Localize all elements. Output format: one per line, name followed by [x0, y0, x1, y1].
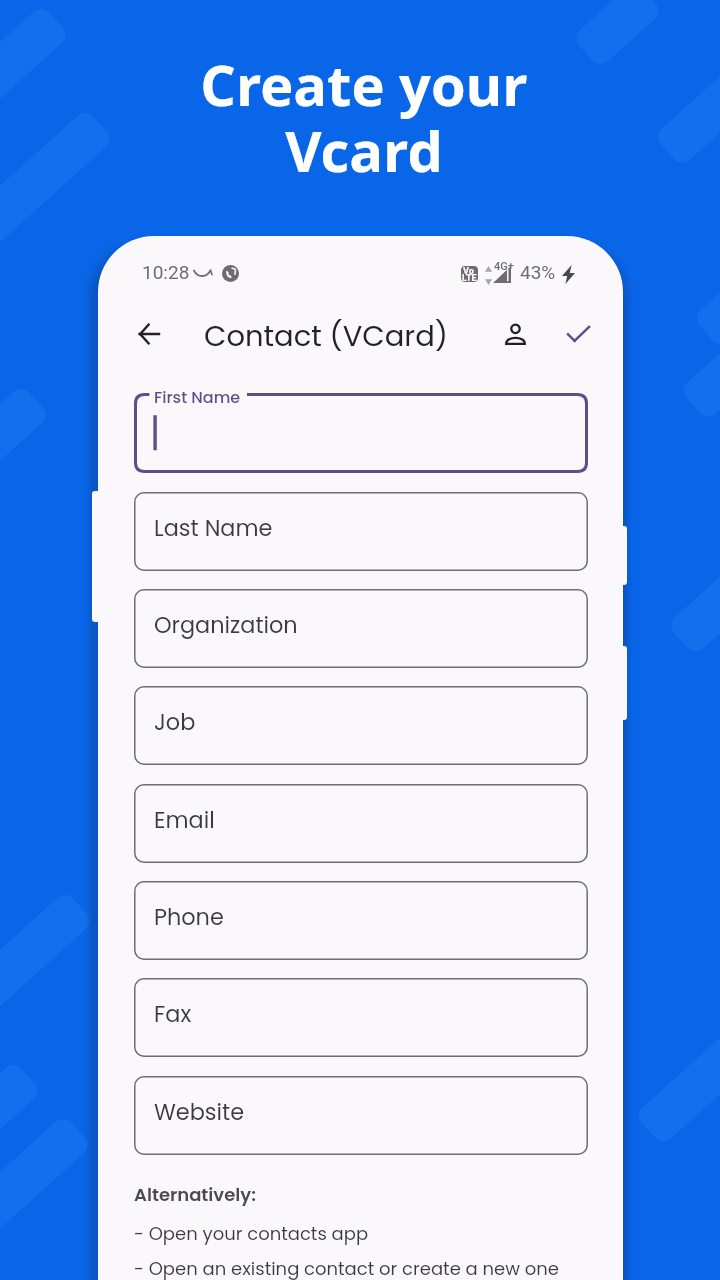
button[interactable]: Back [131, 316, 167, 352]
staticText: First Name [154, 386, 241, 408]
staticText: 4G+ [494, 260, 514, 273]
button[interactable]: Organization [134, 589, 588, 668]
staticText: - Open an existing contact or create a n… [134, 1256, 560, 1280]
staticText: Email [154, 804, 215, 835]
staticText: Create your Vcard [200, 46, 528, 188]
button[interactable]: Pick contact [496, 315, 534, 353]
button[interactable]: Save [559, 315, 597, 353]
staticText: Organization [154, 609, 298, 640]
button[interactable]: Email [134, 784, 588, 863]
staticText: Phone [154, 901, 224, 932]
button[interactable]: Job [134, 686, 588, 765]
staticText: 10:28 [142, 261, 190, 283]
staticText: Alternatively: [134, 1182, 256, 1207]
button[interactable]: Last Name [134, 492, 588, 571]
staticText: Contact (VCard) [204, 316, 448, 357]
staticText: Vo [463, 266, 474, 277]
staticText: Job [154, 706, 196, 737]
button[interactable]: Fax [134, 978, 588, 1057]
staticText: Website [154, 1096, 245, 1127]
button[interactable]: First Name [134, 393, 588, 473]
staticText: - Open your contacts app [134, 1221, 369, 1246]
staticText: LTE [462, 273, 477, 282]
staticText: Last Name [154, 512, 273, 543]
button[interactable]: Website [134, 1076, 588, 1155]
staticText: Fax [154, 998, 192, 1029]
staticText: 43% [520, 261, 556, 283]
button[interactable]: Phone [134, 881, 588, 960]
